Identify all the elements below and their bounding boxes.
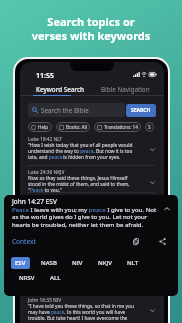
button[interactable]: ALL [46, 272, 65, 284]
button[interactable]: Luke 19:42 NLT [20, 136, 164, 163]
button[interactable]: SEARCH [126, 104, 156, 117]
staticText: "I have told you these things, so that i… [28, 303, 141, 321]
button[interactable]: Keyword Search [36, 85, 85, 94]
button[interactable]: Share [156, 235, 168, 247]
button[interactable]: Search the Bible [28, 103, 125, 117]
staticText: Peace I leave with you; my peace I give … [28, 202, 141, 220]
button[interactable]: NASB [37, 257, 61, 269]
button[interactable]: Bible Navigation [101, 85, 150, 94]
staticText: NLT [127, 259, 139, 267]
staticText: Luke 19:42 NLT [28, 136, 63, 143]
other: Expand [146, 304, 158, 316]
button[interactable]: NLT [123, 257, 143, 269]
staticText: ESV [15, 259, 26, 267]
staticText: NIV [72, 259, 83, 267]
button[interactable]: John 14:27 ESV [20, 196, 164, 223]
button[interactable]: Luke 24:36 NKJV [20, 169, 164, 196]
staticText: Peace I leave with you; my peace I give … [12, 205, 158, 229]
button[interactable]: Collapse [160, 202, 173, 215]
staticText: NRSV [19, 274, 35, 282]
staticText: John 14:27 ESV [28, 196, 62, 203]
staticText: ALL [50, 274, 61, 282]
staticText: SEARCH [131, 107, 151, 114]
staticText: Translations: 14 [104, 124, 138, 130]
button[interactable]: Context [12, 237, 36, 246]
staticText: 11:55 [36, 71, 54, 81]
other: Expand [146, 203, 158, 215]
staticText: Now as they said these things, Jesus Him… [28, 175, 141, 193]
staticText: John 16:33 NIV [28, 297, 62, 304]
button[interactable]: Help [28, 122, 52, 132]
button[interactable]: John 16:33 NIV [20, 297, 164, 323]
button[interactable]: NRSV [15, 272, 39, 284]
staticText: NKJV [98, 259, 112, 267]
button[interactable]: ESV [11, 257, 30, 269]
staticText: "How I wish today that you of all people… [28, 142, 141, 160]
staticText: Context [12, 237, 36, 246]
staticText: Luke 24:36 NKJV [28, 169, 65, 176]
staticText: Search topics or verses with keywords [0, 14, 182, 43]
button[interactable]: NIV [68, 257, 87, 269]
button[interactable]: Translations: 14 [94, 122, 141, 132]
staticText: S [148, 124, 151, 130]
button[interactable]: Books: All [56, 122, 90, 132]
staticText: Books: All [66, 124, 87, 130]
button[interactable]: John 14:27 ESV [4, 195, 178, 296]
staticText: Help [38, 124, 49, 130]
other: Expand [146, 176, 158, 188]
staticText: Search the Bible [41, 106, 89, 115]
button[interactable]: S [145, 122, 154, 132]
staticText: NASB [41, 259, 57, 267]
staticText: John 14:27 ESV [12, 197, 57, 206]
button[interactable]: NKJV [94, 257, 116, 269]
button[interactable]: Copy [130, 235, 142, 247]
other: Expand [146, 143, 158, 155]
